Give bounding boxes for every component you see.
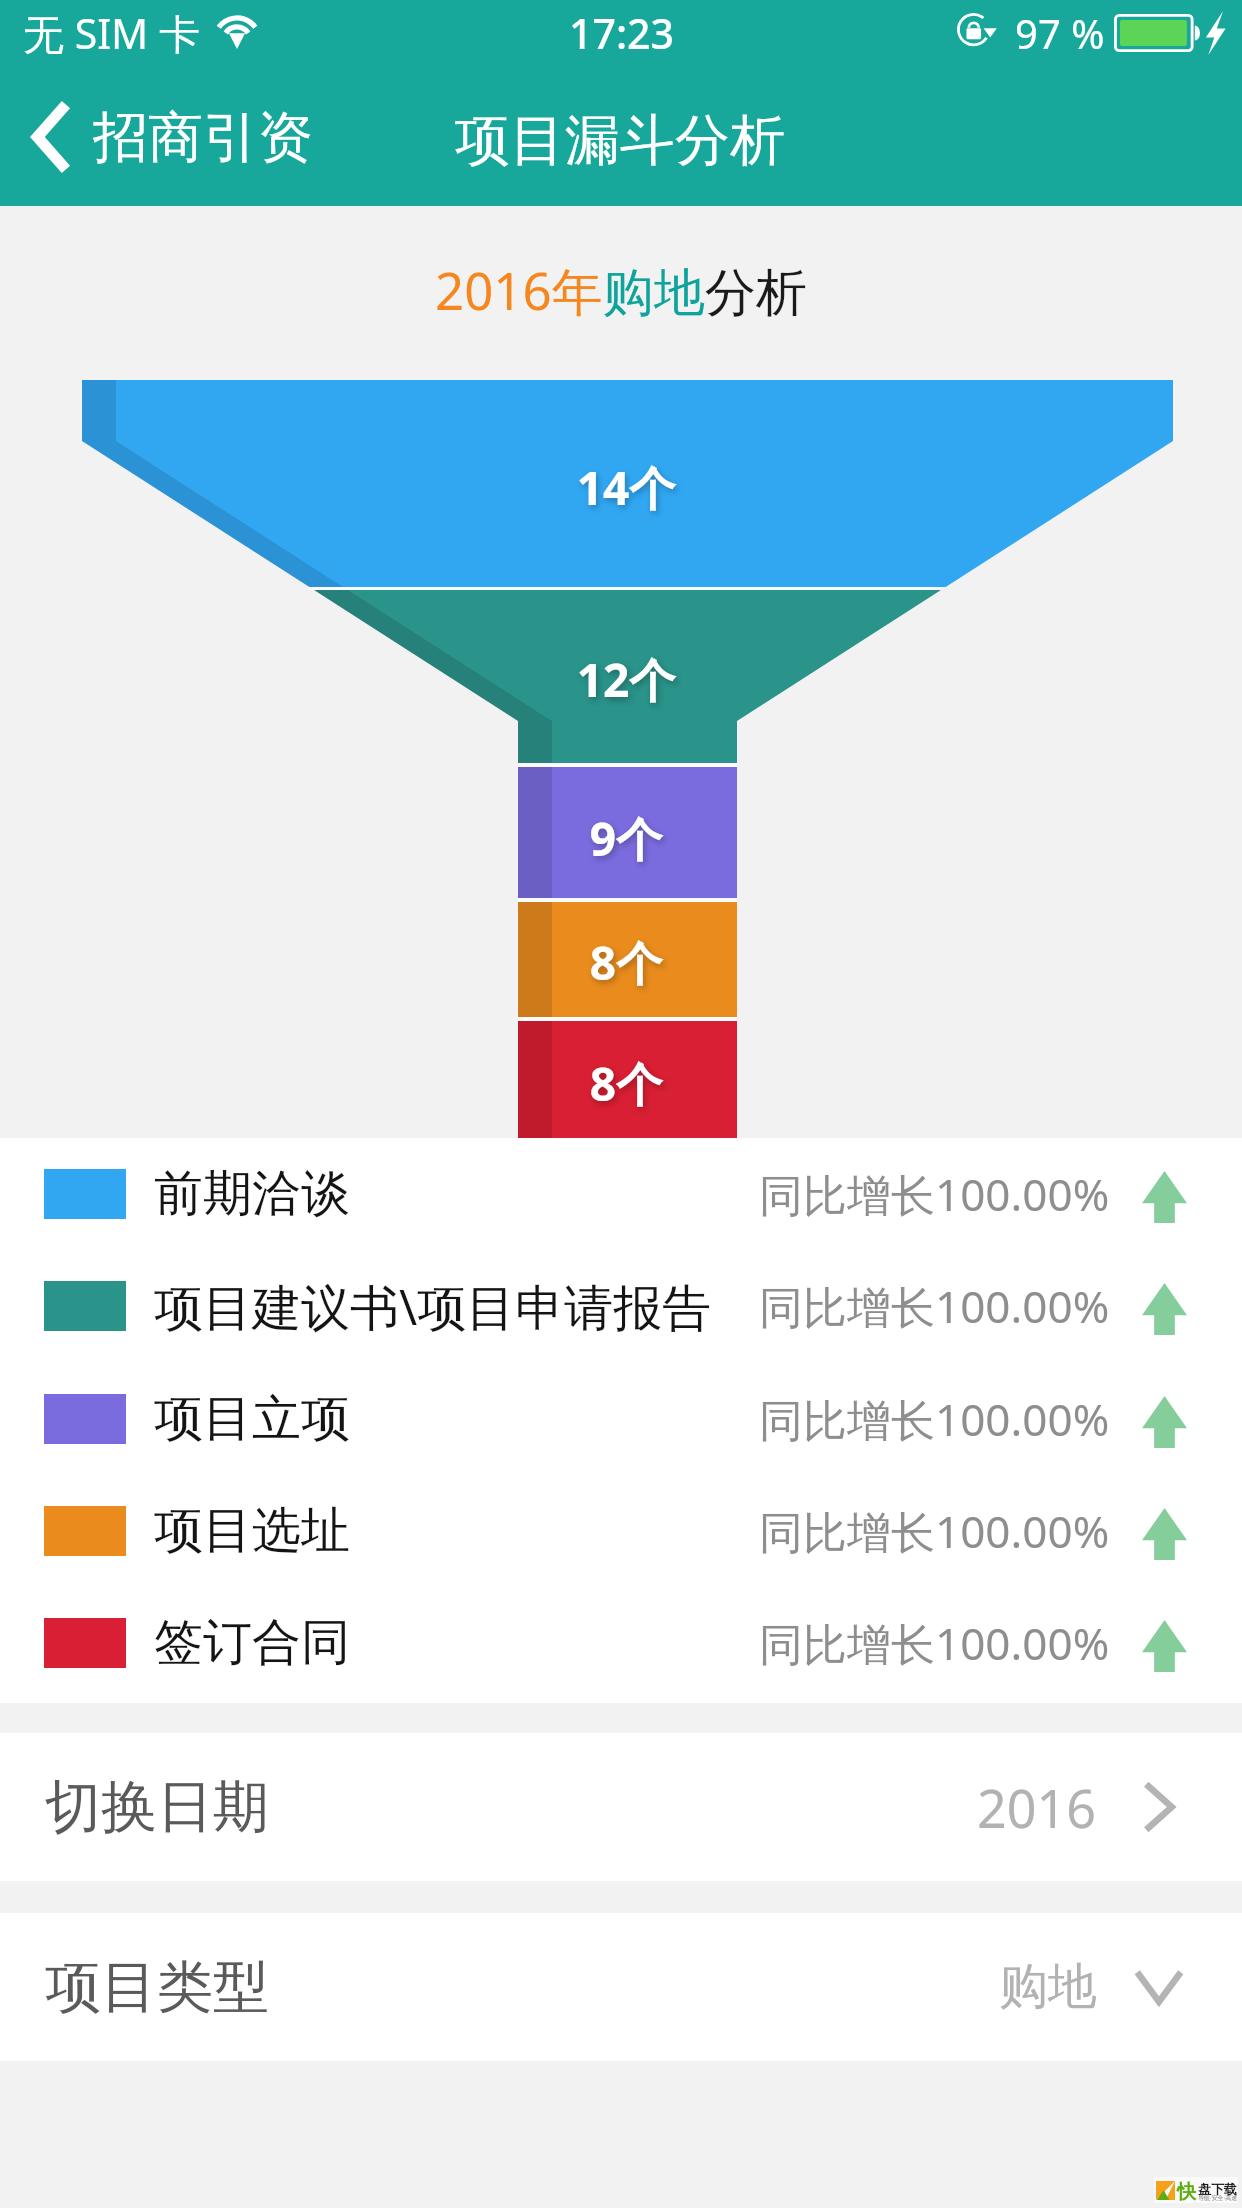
staticText: 12个 bbox=[526, 648, 726, 711]
button[interactable]: 项目立项 bbox=[0, 1367, 1242, 1471]
staticText: 导航·安全·高速 bbox=[1198, 2194, 1238, 2202]
staticText: 招商引资 bbox=[93, 103, 313, 172]
staticText: 盘下载 bbox=[1198, 2181, 1237, 2197]
staticText: 项目立项 bbox=[154, 1388, 350, 1450]
staticText: 项目选址 bbox=[154, 1500, 350, 1562]
staticText: 同比增长100.00% bbox=[759, 1613, 1110, 1673]
button[interactable]: 项目建议书\项目申请报告 bbox=[0, 1254, 1242, 1358]
staticText: 2016 bbox=[977, 1772, 1096, 1843]
staticText: 同比增长100.00% bbox=[759, 1501, 1110, 1561]
other: Back bbox=[28, 101, 70, 173]
staticText: 17:23 bbox=[569, 5, 674, 61]
staticText: 购地 bbox=[999, 1956, 1097, 2018]
staticText: 97 % bbox=[1015, 6, 1105, 60]
staticText: 项目建议书\项目申请报告 bbox=[154, 1273, 712, 1340]
button[interactable]: 项目类型 bbox=[0, 1913, 1242, 2061]
staticText: 签订合同 bbox=[154, 1612, 350, 1674]
staticText: 前期洽谈 bbox=[154, 1163, 350, 1225]
staticText: 无 SIM 卡 bbox=[23, 5, 200, 61]
button[interactable]: 项目选址 bbox=[0, 1479, 1242, 1583]
button[interactable]: Back bbox=[0, 68, 343, 206]
staticText: 8个 bbox=[526, 1052, 726, 1115]
button[interactable]: 前期洽谈 bbox=[0, 1142, 1242, 1246]
button[interactable]: 切换日期 bbox=[0, 1733, 1242, 1881]
staticText: 同比增长100.00% bbox=[759, 1389, 1110, 1449]
staticText: 同比增长100.00% bbox=[759, 1164, 1110, 1224]
staticText: 2016年购地分析 bbox=[435, 255, 807, 325]
button[interactable]: 签订合同 bbox=[0, 1591, 1242, 1695]
staticText: 项目漏斗分析 bbox=[455, 106, 785, 175]
staticText: 14个 bbox=[526, 456, 726, 519]
staticText: 快 bbox=[1177, 2180, 1196, 2204]
staticText: 8个 bbox=[526, 931, 726, 994]
staticText: 9个 bbox=[526, 807, 726, 870]
staticText: 切换日期 bbox=[45, 1772, 269, 1843]
staticText: 项目类型 bbox=[45, 1952, 269, 2023]
staticText: 同比增长100.00% bbox=[759, 1276, 1110, 1336]
